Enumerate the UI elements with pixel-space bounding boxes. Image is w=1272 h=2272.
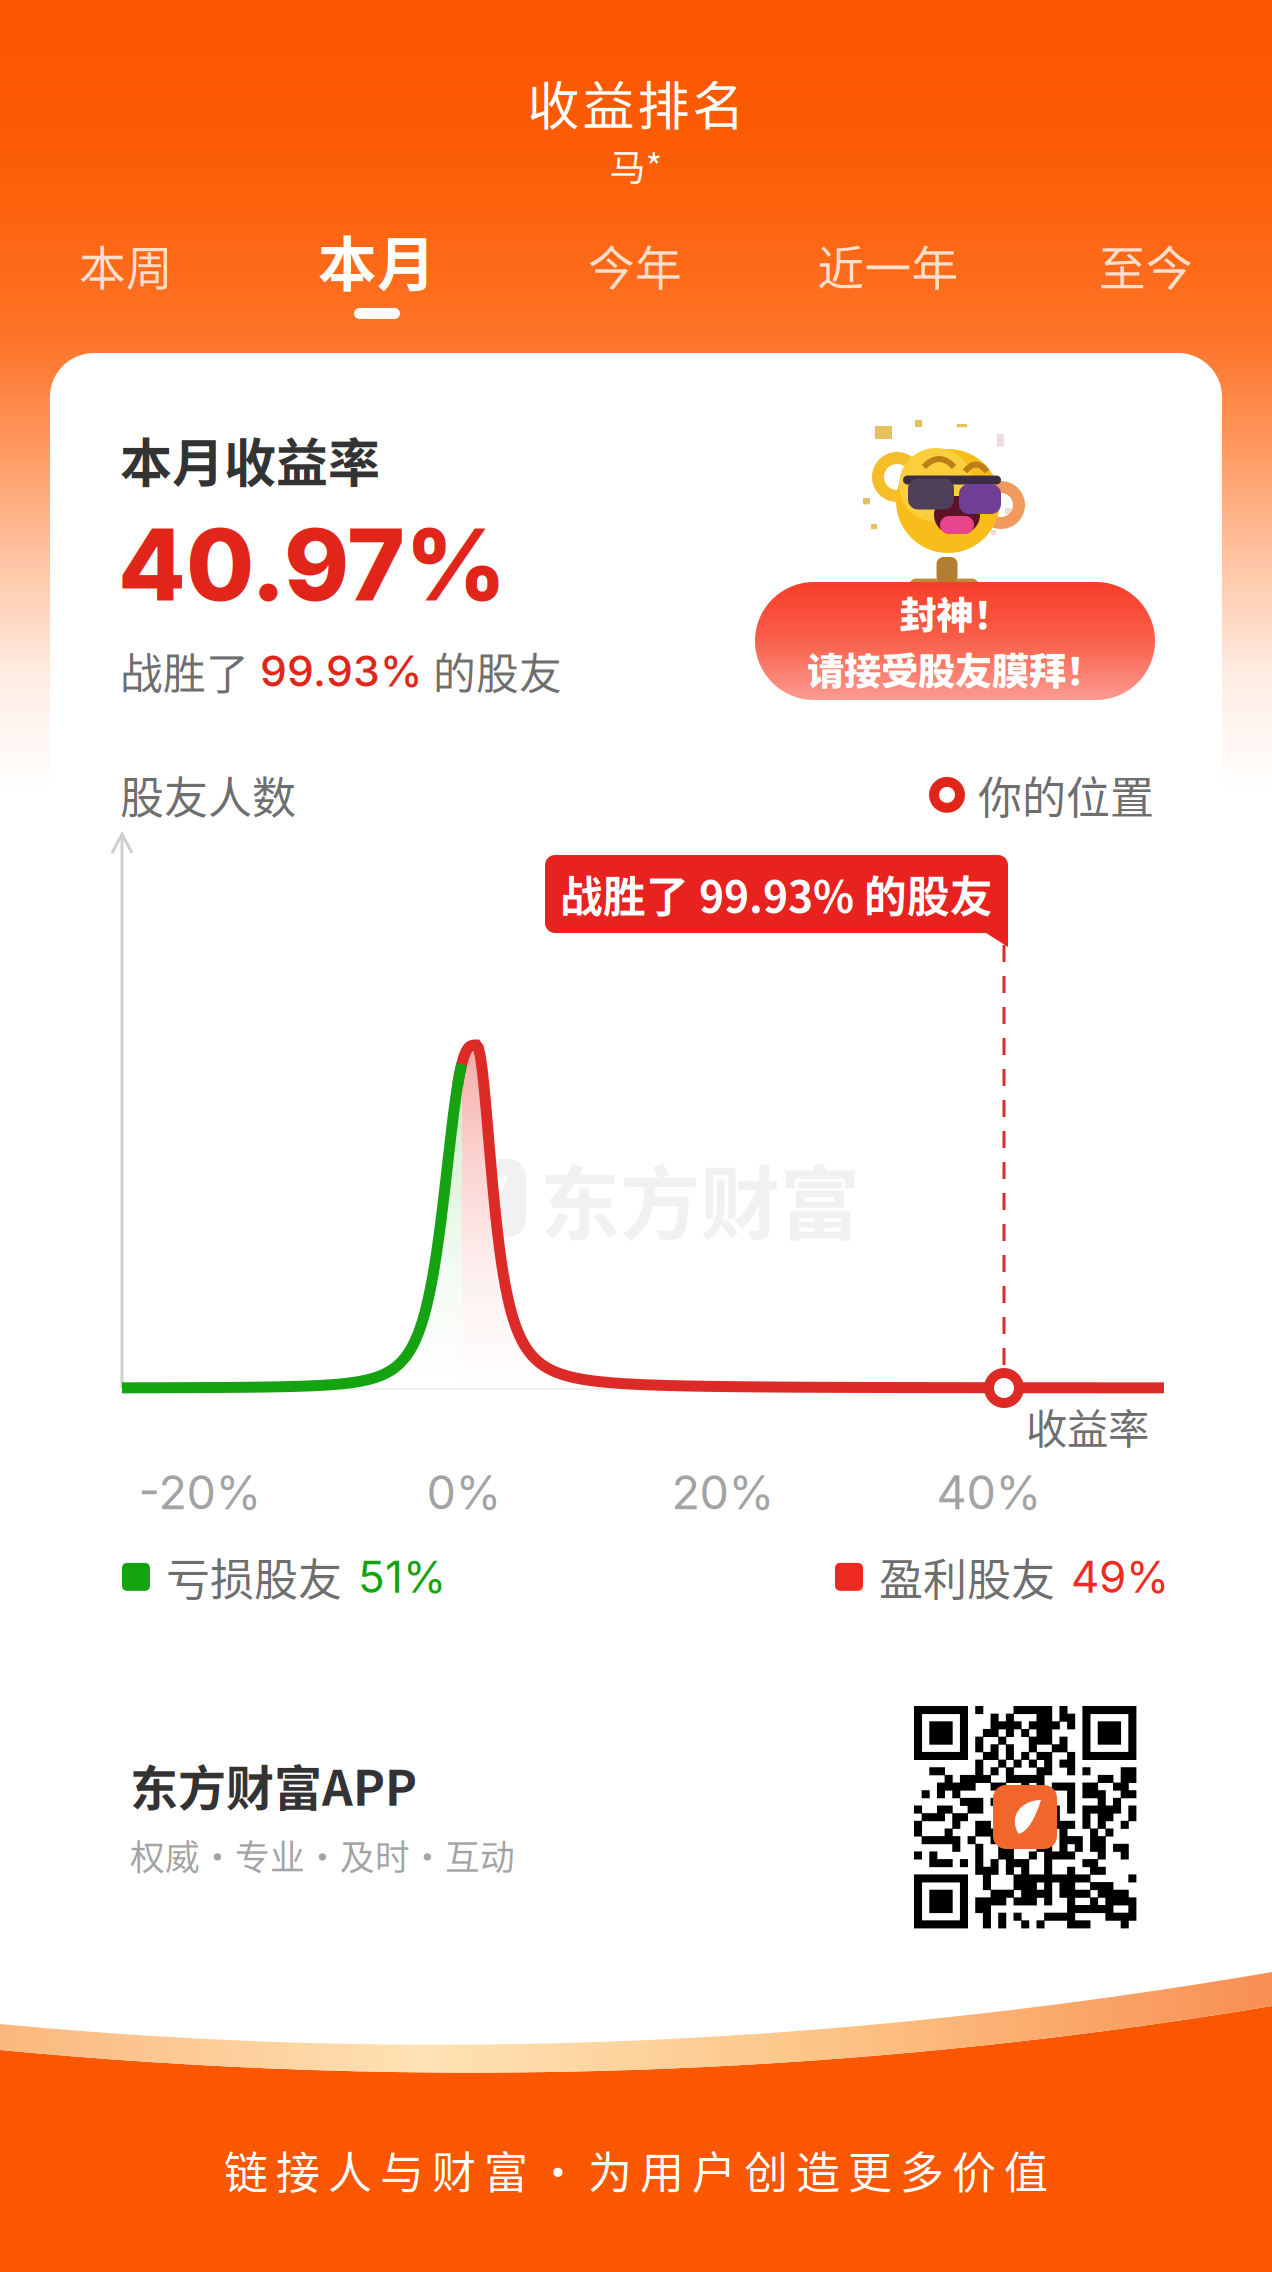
staticText: -20% xyxy=(138,1464,261,1520)
button[interactable]: 近一年 xyxy=(758,231,1018,315)
staticText: 权威·专业·及时·互动 xyxy=(130,1830,515,1880)
staticText: 今年 xyxy=(588,231,682,299)
staticText: 股友人数 xyxy=(120,763,296,827)
staticText: 至今 xyxy=(1099,231,1193,299)
staticText: 盈利股友 xyxy=(879,1545,1055,1609)
staticText: 你的位置 xyxy=(978,763,1154,827)
staticText: 49% xyxy=(1071,1550,1169,1603)
staticText: 99.93% xyxy=(249,645,433,697)
staticText: 收益率 xyxy=(1026,1396,1149,1456)
staticText: 近一年 xyxy=(817,231,958,299)
staticText: 收益排名 xyxy=(527,65,744,140)
staticText: 链接人与财富·为用户创造更多价值 xyxy=(224,2138,1048,2202)
staticText: 东方财富 xyxy=(540,1140,860,1256)
staticText: 本月收益率 xyxy=(120,422,380,497)
staticText: 请接受股友膜拜！ xyxy=(807,642,1103,696)
staticText: 20% xyxy=(671,1464,774,1520)
staticText: 0% xyxy=(426,1464,501,1520)
staticText: 战胜了 99.93% 的股友 xyxy=(560,863,993,925)
staticText: 东方财富APP xyxy=(130,1750,417,1819)
staticText: 的股友 xyxy=(433,640,562,702)
button[interactable]: 本周 xyxy=(0,231,256,315)
staticText: 本月 xyxy=(318,218,436,303)
button[interactable]: 今年 xyxy=(505,231,765,315)
staticText: 封神！ xyxy=(899,586,1010,640)
staticText: 40% xyxy=(936,1464,1041,1520)
staticText: 40.97% xyxy=(118,505,507,624)
staticText: 马* xyxy=(609,139,662,191)
staticText: 战胜了 xyxy=(120,640,249,702)
button[interactable]: 本月 xyxy=(247,218,507,319)
staticText: 本周 xyxy=(79,231,173,299)
staticText: 亏损股友 xyxy=(166,1545,342,1609)
button[interactable]: 至今 xyxy=(1016,231,1272,315)
staticText: 51% xyxy=(358,1550,446,1603)
